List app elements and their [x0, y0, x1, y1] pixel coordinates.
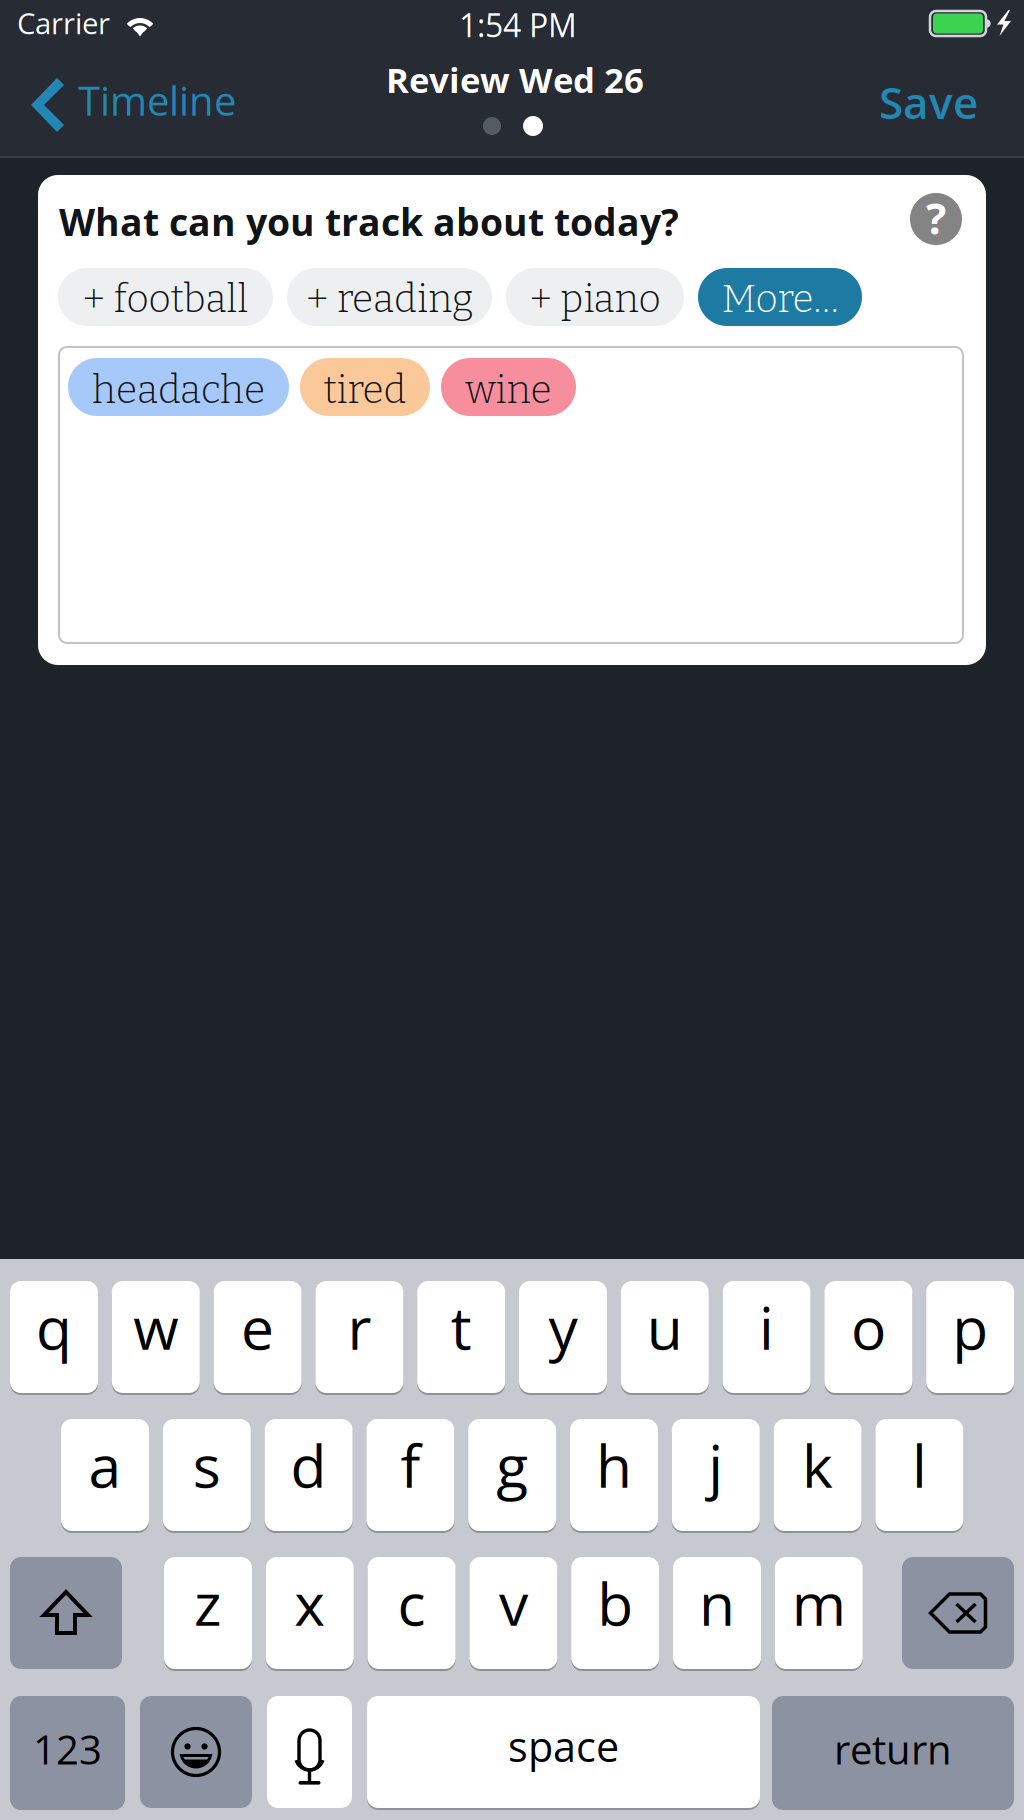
button[interactable]: + reading: [287, 268, 492, 326]
staticText: ?: [926, 189, 946, 247]
button[interactable]: return: [772, 1696, 1014, 1808]
staticText: More…: [721, 276, 838, 322]
staticText: d: [291, 1425, 327, 1505]
staticText: s: [193, 1425, 221, 1505]
button[interactable]: f: [366, 1419, 454, 1531]
staticText: + reading: [306, 276, 473, 322]
button[interactable]: t: [417, 1281, 505, 1393]
staticText: k: [802, 1425, 833, 1505]
staticText: g: [496, 1425, 528, 1505]
staticText: 1:54 PM: [459, 3, 577, 47]
button[interactable]: x: [266, 1557, 354, 1669]
button[interactable]: l: [875, 1419, 963, 1531]
button[interactable]: + piano: [506, 268, 684, 326]
staticText: w: [133, 1287, 178, 1367]
staticText: r: [347, 1287, 371, 1367]
button[interactable]: Save: [879, 72, 978, 132]
button[interactable]: e: [214, 1281, 302, 1393]
button[interactable]: p: [926, 1281, 1014, 1393]
button[interactable]: g: [468, 1419, 556, 1531]
staticText: o: [851, 1287, 886, 1367]
staticText: m: [792, 1563, 846, 1643]
staticText: return: [834, 1722, 952, 1776]
button[interactable]: space: [367, 1696, 760, 1808]
staticText: h: [596, 1425, 632, 1505]
button[interactable]: tired: [300, 358, 430, 416]
button[interactable]: More…: [698, 268, 862, 326]
staticText: tired: [323, 367, 406, 413]
button[interactable]: s: [163, 1419, 251, 1531]
staticText: Save: [879, 72, 978, 132]
button[interactable]: c: [368, 1557, 456, 1669]
button[interactable]: y: [519, 1281, 607, 1393]
staticText: space: [508, 1718, 619, 1774]
button[interactable]: Emoji: [140, 1696, 252, 1808]
button[interactable]: b: [571, 1557, 659, 1669]
button[interactable]: u: [621, 1281, 709, 1393]
staticText: Timeline: [78, 73, 236, 127]
button[interactable]: k: [774, 1419, 862, 1531]
button[interactable]: Shift: [10, 1557, 122, 1669]
staticText: u: [647, 1287, 683, 1367]
staticText: y: [548, 1287, 577, 1367]
staticText: f: [400, 1425, 420, 1505]
button[interactable]: i: [723, 1281, 811, 1393]
staticText: l: [912, 1425, 927, 1505]
button[interactable]: n: [673, 1557, 761, 1669]
staticText: wine: [465, 367, 551, 413]
staticText: i: [759, 1287, 774, 1367]
staticText: c: [398, 1563, 426, 1643]
button[interactable]: w: [112, 1281, 200, 1393]
staticText: a: [88, 1425, 121, 1505]
button[interactable]: Help: [910, 193, 962, 245]
staticText: x: [294, 1563, 325, 1643]
staticText: headache: [92, 367, 265, 413]
staticText: b: [597, 1563, 633, 1643]
button[interactable]: m: [775, 1557, 863, 1669]
staticText: z: [194, 1563, 222, 1643]
staticText: + piano: [529, 276, 660, 322]
staticText: q: [36, 1287, 72, 1367]
staticText: p: [952, 1287, 988, 1367]
button[interactable]: a: [61, 1419, 149, 1531]
button[interactable]: h: [570, 1419, 658, 1531]
staticText: 123: [33, 1722, 102, 1776]
button[interactable]: Delete: [902, 1557, 1014, 1669]
button[interactable]: + football: [58, 268, 273, 326]
button[interactable]: d: [265, 1419, 353, 1531]
staticText: Review Wed 26: [386, 56, 644, 103]
staticText: v: [499, 1563, 528, 1643]
staticText: + football: [82, 276, 248, 322]
button[interactable]: r: [315, 1281, 403, 1393]
button[interactable]: 123: [10, 1696, 125, 1808]
button[interactable]: Timeline: [26, 70, 244, 138]
staticText: What can you track about today?: [59, 196, 679, 247]
button[interactable]: Dictation: [267, 1696, 352, 1808]
button[interactable]: z: [164, 1557, 252, 1669]
button[interactable]: q: [10, 1281, 98, 1393]
staticText: n: [699, 1563, 735, 1643]
staticText: j: [708, 1425, 723, 1505]
staticText: Carrier: [17, 3, 110, 43]
button[interactable]: o: [824, 1281, 912, 1393]
button[interactable]: headache: [68, 358, 289, 416]
staticText: t: [451, 1287, 472, 1367]
button[interactable]: wine: [441, 358, 576, 416]
button[interactable]: v: [469, 1557, 557, 1669]
staticText: e: [241, 1287, 274, 1367]
button[interactable]: j: [672, 1419, 760, 1531]
